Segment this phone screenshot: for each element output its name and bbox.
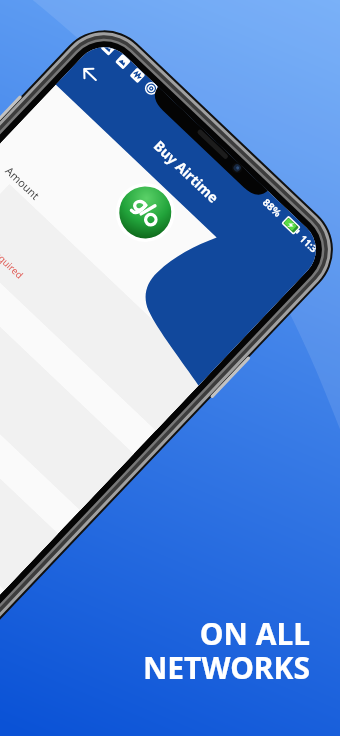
staticText: ON ALL NETWORKS [142, 613, 310, 687]
